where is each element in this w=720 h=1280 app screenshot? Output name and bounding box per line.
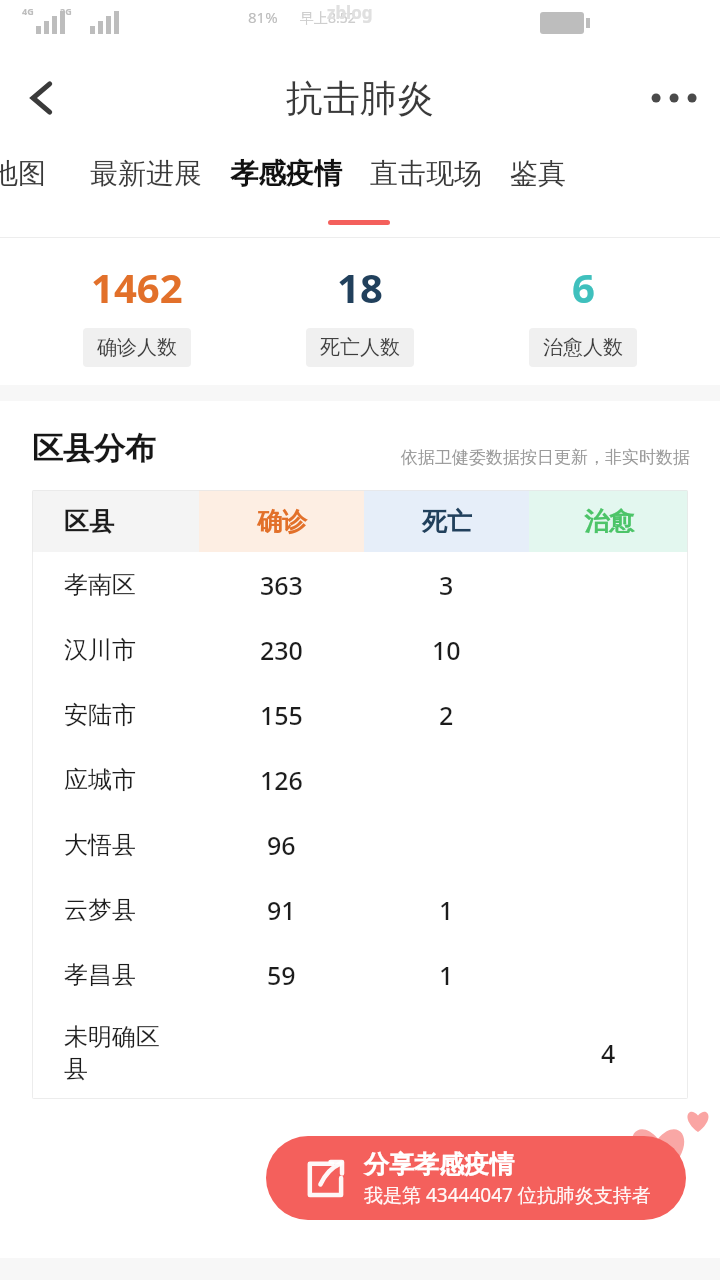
staticText: 4G <box>22 5 34 17</box>
button[interactable]: 最新进展 <box>84 156 208 191</box>
button[interactable]: 孝昌县 <box>32 942 688 1007</box>
staticText: 2G <box>60 5 72 17</box>
staticText: 应城市 <box>64 765 136 795</box>
button[interactable]: 未明确区 县 <box>32 1007 688 1099</box>
staticText: 抗击肺炎 <box>286 75 434 122</box>
staticText: 汉川市 <box>64 635 136 665</box>
staticText: 4 <box>601 1036 616 1070</box>
staticText: 区县 <box>64 506 114 537</box>
staticText: 确诊人数 <box>97 335 177 360</box>
staticText: 孝昌县 <box>64 960 136 990</box>
button[interactable]: 孝感疫情 <box>224 156 348 191</box>
staticText: 分享孝感疫情 <box>364 1149 514 1180</box>
staticText: 死亡 <box>422 506 472 537</box>
staticText: 3 <box>439 568 454 602</box>
staticText: 确诊 <box>257 506 307 537</box>
staticText: 孝南区 <box>64 570 136 600</box>
staticText: 安陆市 <box>64 700 136 730</box>
button[interactable]: 鉴真 <box>504 156 572 191</box>
staticText: 1462 <box>91 260 183 314</box>
staticText: 126 <box>260 763 303 797</box>
staticText: 区县分布 <box>32 429 156 468</box>
staticText: 地图 <box>0 156 46 191</box>
staticText: 6 <box>572 260 595 314</box>
staticText: 91 <box>267 893 296 927</box>
button[interactable]: More options <box>642 66 706 130</box>
staticText: 1 <box>439 893 454 927</box>
button[interactable]: 应城市 <box>32 747 688 812</box>
staticText: 云梦县 <box>64 895 136 925</box>
button[interactable]: 分享孝感疫情 <box>266 1136 686 1220</box>
button[interactable]: 孝南区 <box>32 552 688 617</box>
staticText: 直击现场 <box>370 156 482 191</box>
staticText: 155 <box>260 698 303 732</box>
staticText: 363 <box>260 568 303 602</box>
staticText: zblog <box>327 1 373 24</box>
staticText: 18 <box>337 260 383 314</box>
button[interactable]: Back <box>10 66 74 130</box>
staticText: 96 <box>267 828 296 862</box>
staticText: 81% <box>248 7 278 27</box>
staticText: 治愈人数 <box>543 335 623 360</box>
staticText: 大悟县 <box>64 830 136 860</box>
staticText: 2 <box>439 698 454 732</box>
staticText: 59 <box>267 958 296 992</box>
staticText: 未明确区 县 <box>64 1022 160 1084</box>
staticText: 1 <box>439 958 454 992</box>
button[interactable]: 地图 <box>0 156 52 191</box>
button[interactable]: 大悟县 <box>32 812 688 877</box>
staticText: 鉴真 <box>510 156 566 191</box>
staticText: 最新进展 <box>90 156 202 191</box>
button[interactable]: 直击现场 <box>364 156 488 191</box>
staticText: 10 <box>432 633 461 667</box>
staticText: 230 <box>260 633 303 667</box>
staticText: 依据卫健委数据按日更新，非实时数据 <box>401 447 690 468</box>
button[interactable]: 安陆市 <box>32 682 688 747</box>
staticText: 早上8:52 <box>300 8 356 27</box>
staticText: 孝感疫情 <box>230 156 342 191</box>
button[interactable]: 云梦县 <box>32 877 688 942</box>
staticText: 死亡人数 <box>320 335 400 360</box>
button[interactable]: 汉川市 <box>32 617 688 682</box>
staticText: 治愈 <box>584 506 634 537</box>
staticText: 我是第 43444047 位抗肺炎支持者 <box>364 1182 651 1208</box>
